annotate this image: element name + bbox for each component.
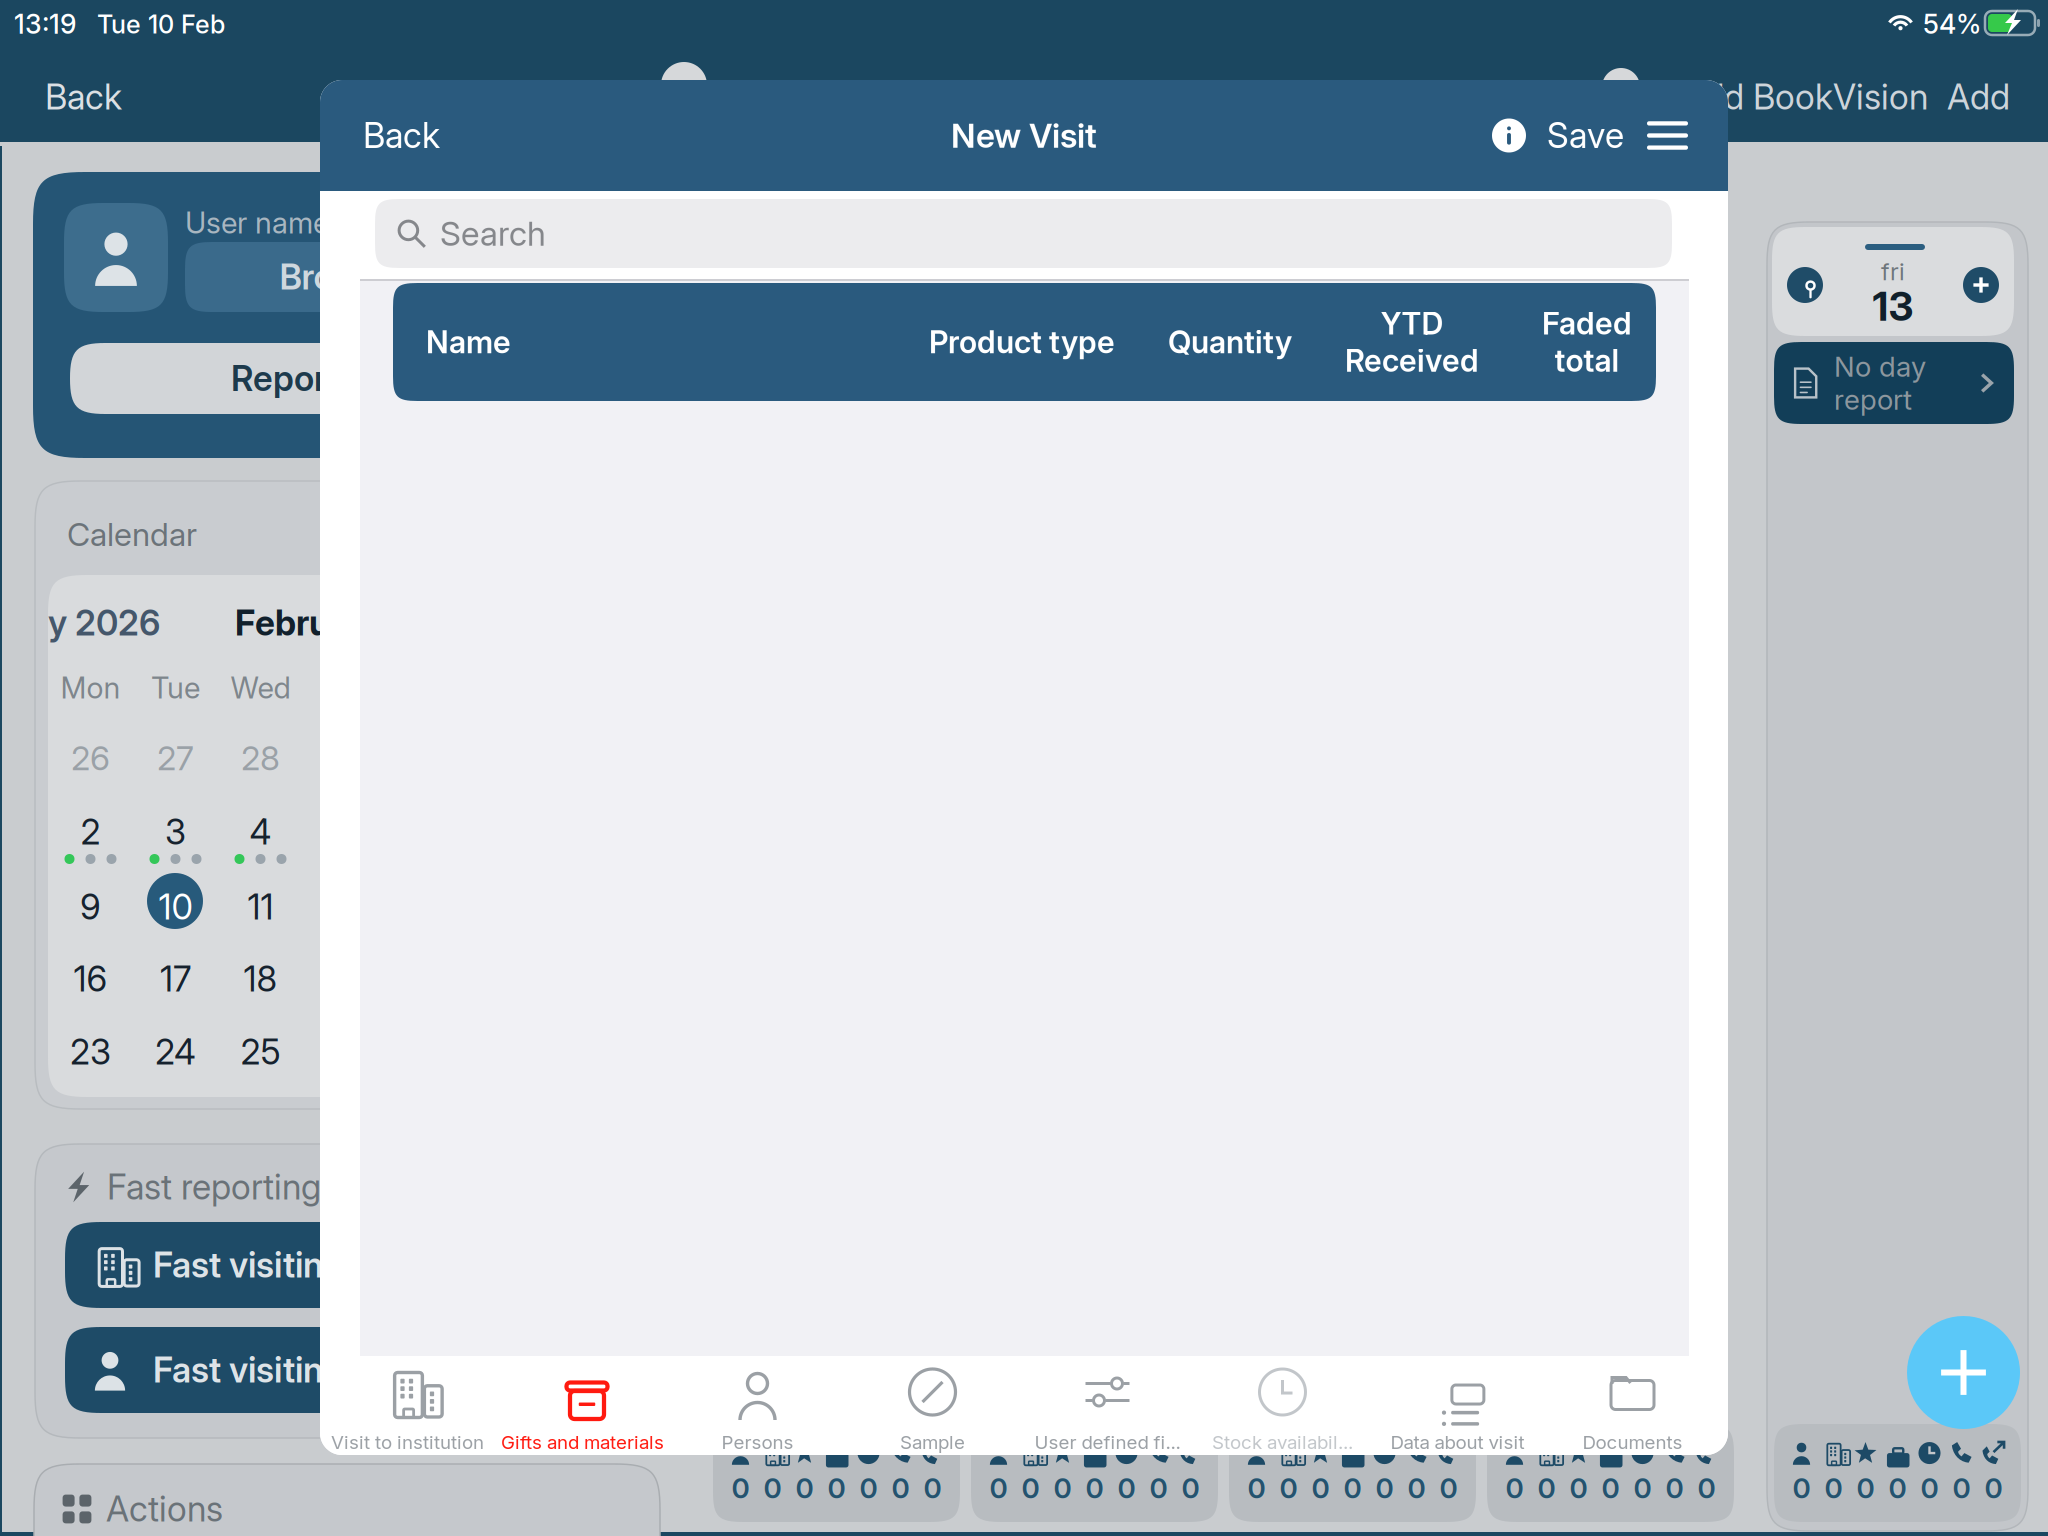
staticText: 0 xyxy=(795,1471,813,1505)
staticText: 0 xyxy=(1279,1471,1297,1505)
button[interactable]: Add xyxy=(1947,76,2010,118)
staticText: No day xyxy=(1834,350,1926,383)
button[interactable]: Visit to institution xyxy=(320,1356,495,1456)
staticText: New Visit xyxy=(951,115,1097,156)
staticText: Febru xyxy=(235,602,330,644)
button[interactable]: Gifts and materials xyxy=(495,1356,670,1456)
button[interactable]: Documents xyxy=(1545,1356,1720,1456)
staticText: YTD xyxy=(1380,305,1443,342)
button[interactable]: Information xyxy=(1486,112,1532,158)
staticText: 0 xyxy=(1920,1471,1938,1505)
staticText: 9 xyxy=(80,886,101,928)
staticText: 0 xyxy=(859,1471,877,1505)
staticText: User name xyxy=(185,205,329,240)
staticText: Back xyxy=(45,76,122,118)
staticText: 10 xyxy=(158,886,192,928)
staticText: Gifts and materials xyxy=(501,1431,664,1454)
button[interactable]: User defined fi... xyxy=(1020,1356,1195,1456)
staticText: 0 xyxy=(827,1471,845,1505)
staticText: 0 xyxy=(1569,1471,1587,1505)
staticText: Data about visit xyxy=(1390,1431,1524,1454)
staticText: 0 xyxy=(1085,1471,1103,1505)
staticText: 25 xyxy=(240,1031,280,1073)
staticText: 0 xyxy=(1311,1471,1329,1505)
staticText: Persons xyxy=(721,1431,793,1454)
staticText: 0 xyxy=(1888,1471,1906,1505)
staticText: 0 xyxy=(1792,1471,1810,1505)
button[interactable]: Menu xyxy=(1641,115,1694,156)
staticText: Tue 10 Feb xyxy=(97,9,225,40)
staticText: 0 xyxy=(891,1471,909,1505)
staticText: Tue xyxy=(151,670,200,705)
button[interactable]: Persons xyxy=(670,1356,845,1456)
staticText: 24 xyxy=(155,1031,196,1073)
staticText: 11 xyxy=(247,886,273,928)
button[interactable]: Save xyxy=(1541,106,1630,164)
button[interactable]: Sample xyxy=(845,1356,1020,1456)
staticText: 13 xyxy=(1872,282,1913,330)
staticText: Fast visiting o xyxy=(153,1244,372,1286)
staticText: 0 xyxy=(1407,1471,1425,1505)
staticText: 'd BookVision xyxy=(1716,76,1928,118)
button[interactable]: Back xyxy=(45,76,122,118)
staticText: Add xyxy=(1947,76,2010,118)
staticText: User defined fi... xyxy=(1034,1431,1180,1454)
staticText: 0 xyxy=(1181,1471,1199,1505)
staticText: Report xyxy=(231,357,339,399)
staticText: 13:19 xyxy=(14,8,76,40)
staticText: 0 xyxy=(1247,1471,1265,1505)
staticText: 0 xyxy=(1984,1471,2002,1505)
staticText: Product type xyxy=(929,323,1115,360)
staticText: Mon xyxy=(60,670,120,705)
staticText: 0 xyxy=(1375,1471,1393,1505)
staticText: Quantity xyxy=(1168,323,1292,360)
staticText: Fast visiting o xyxy=(153,1349,372,1391)
staticText: Save xyxy=(1547,114,1624,156)
button[interactable]: Stock availabil... xyxy=(1195,1356,1370,1456)
staticText: Wed xyxy=(230,670,290,705)
staticText: Name xyxy=(426,323,511,360)
staticText: 0 xyxy=(1665,1471,1683,1505)
staticText: 27 xyxy=(157,738,194,778)
staticText: 0 xyxy=(1343,1471,1361,1505)
staticText: fri xyxy=(1881,257,1905,286)
staticText: Back xyxy=(363,114,440,156)
staticText: 2 xyxy=(80,811,100,853)
staticText: Sample xyxy=(900,1431,965,1454)
staticText: report xyxy=(1834,382,1912,416)
staticText: 0 xyxy=(1505,1471,1523,1505)
staticText: Calendar xyxy=(953,76,1092,118)
staticText: 0 xyxy=(923,1471,941,1505)
staticText: Visit to institution xyxy=(331,1431,484,1454)
staticText: 17 xyxy=(160,958,191,1000)
staticText: 26 xyxy=(71,738,110,778)
staticText: 4 xyxy=(249,811,271,853)
button[interactable]: Back xyxy=(355,106,448,164)
button[interactable]: Data about visit xyxy=(1370,1356,1545,1456)
staticText: 0 xyxy=(1697,1471,1715,1505)
staticText: 23 xyxy=(70,1031,111,1073)
staticText: 16 xyxy=(73,958,107,1000)
staticText: 0 xyxy=(1053,1471,1071,1505)
staticText: Search xyxy=(440,213,546,254)
staticText: 0 xyxy=(731,1471,749,1505)
staticText: 0 xyxy=(1021,1471,1039,1505)
staticText: 0 xyxy=(1633,1471,1651,1505)
staticText: Stock availabil... xyxy=(1212,1431,1353,1454)
staticText: Actions xyxy=(106,1488,223,1530)
staticText: 0 xyxy=(1856,1471,1874,1505)
staticText: 0 xyxy=(1149,1471,1167,1505)
staticText: Calendar xyxy=(67,515,197,554)
staticText: 3 xyxy=(165,811,186,853)
staticText: 0 xyxy=(1952,1471,1970,1505)
staticText: 0 xyxy=(1824,1471,1842,1505)
staticText: 18 xyxy=(243,958,277,1000)
staticText: 0 xyxy=(1117,1471,1135,1505)
staticText: Characteristics xyxy=(394,76,626,118)
staticText: Documents xyxy=(1582,1431,1682,1454)
staticText: 0 xyxy=(1537,1471,1555,1505)
staticText: 0 xyxy=(763,1471,781,1505)
staticText: total xyxy=(1554,342,1619,379)
staticText: Fast reporting xyxy=(107,1166,321,1208)
staticText: 54% xyxy=(1923,8,1981,40)
